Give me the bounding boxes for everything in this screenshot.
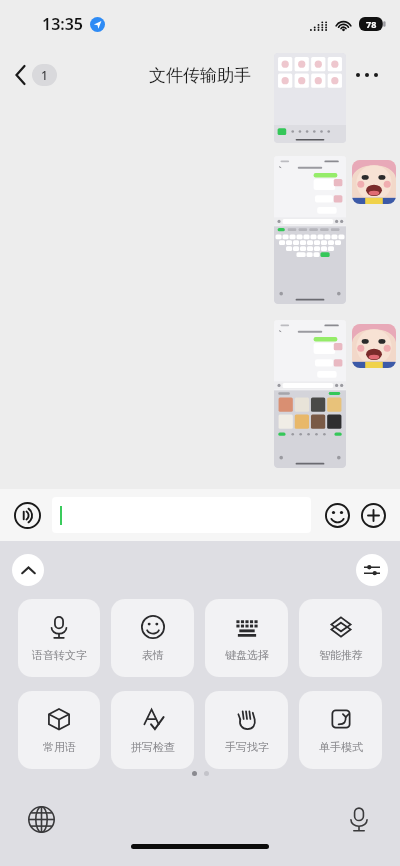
button[interactable]: Chat screenshot [274, 156, 346, 304]
staticText: 键盘选择 [225, 648, 269, 662]
button[interactable]: More options [350, 67, 384, 83]
button[interactable]: Voice dictation [342, 802, 376, 836]
button[interactable]: Emoji [322, 500, 352, 530]
button[interactable]: More [358, 500, 388, 530]
button[interactable]: Collapse panel [12, 554, 44, 586]
staticText: 常用语 [43, 740, 76, 754]
button[interactable]: 表情 [111, 599, 194, 677]
button[interactable]: Settings [356, 554, 388, 586]
button[interactable]: Back, 1 unread [12, 60, 61, 90]
button[interactable]: Sticker [352, 160, 396, 204]
staticText: 拼写检查 [131, 740, 175, 754]
staticText: 1 [41, 67, 48, 83]
button[interactable]: Chat screenshot [274, 320, 346, 468]
button[interactable]: Voice input [12, 500, 42, 530]
staticText: 文件传输助手 [149, 65, 251, 86]
button[interactable]: Screenshot image [274, 53, 346, 143]
button[interactable]: 单手模式 [299, 691, 382, 769]
button[interactable]: 手写找字 [205, 691, 288, 769]
button[interactable]: 智能推荐 [299, 599, 382, 677]
staticText: 13:35 [42, 13, 84, 35]
staticText: 智能推荐 [319, 648, 363, 662]
staticText: 手写找字 [225, 740, 269, 754]
button[interactable]: 拼写检查 [111, 691, 194, 769]
button[interactable]: Message input [52, 497, 311, 533]
staticText: 单手模式 [319, 740, 363, 754]
staticText: 表情 [142, 648, 164, 662]
button[interactable]: 键盘选择 [205, 599, 288, 677]
button[interactable]: 语音转文字 [18, 599, 100, 677]
button[interactable]: Change language [24, 802, 58, 836]
button[interactable]: Sticker [352, 324, 396, 368]
staticText: 78 [366, 18, 377, 30]
button[interactable]: 常用语 [18, 691, 100, 769]
staticText: 语音转文字 [32, 648, 87, 662]
